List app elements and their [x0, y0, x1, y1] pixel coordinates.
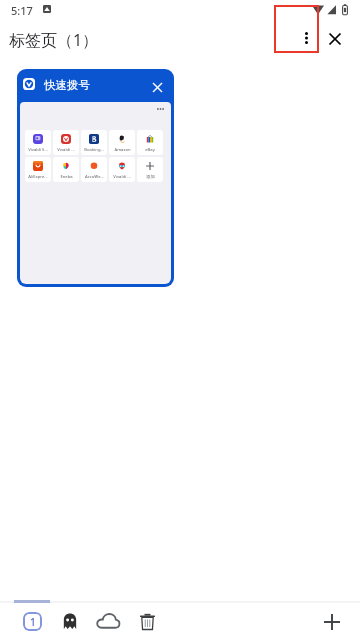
button[interactable]: Vivaldi ... [109, 157, 135, 182]
button[interactable]: eBay [137, 130, 163, 155]
staticText: Vivaldi ... [57, 147, 75, 153]
staticText: 1 [30, 615, 36, 629]
button[interactable]: Eneba [53, 157, 79, 182]
staticText: 快速拨号 [44, 78, 90, 92]
staticText: Amazon [114, 147, 131, 153]
staticText: Vivaldi ... [113, 174, 131, 180]
button[interactable]: Amazon [109, 130, 135, 155]
staticText: Booking... [84, 147, 104, 153]
button[interactable]: More options [288, 20, 324, 56]
button[interactable]: Synced tabs [90, 601, 126, 640]
button[interactable]: 添加 [137, 157, 163, 182]
button[interactable]: Private tabs [52, 601, 88, 640]
button[interactable]: Recently closed tabs [129, 601, 165, 640]
staticText: 标签页（1） [9, 29, 99, 51]
button[interactable]: New tab [310, 601, 352, 640]
staticText: 添加 [146, 174, 155, 179]
button[interactable]: Booking... [81, 130, 107, 155]
button[interactable]: Tabs [12, 601, 52, 640]
staticText: AliExpre... [28, 174, 48, 180]
button[interactable]: Vivaldi ... [53, 130, 79, 155]
button[interactable]: Close [320, 24, 350, 54]
button[interactable]: Vivaldi S... [25, 130, 51, 155]
staticText: 5:17 [11, 3, 33, 18]
button[interactable]: 快速拨号 [17, 69, 174, 287]
button[interactable]: AliExpre... [25, 157, 51, 182]
staticText: Eneba [60, 174, 73, 180]
staticText: eBay [145, 147, 155, 153]
button[interactable]: Close tab [146, 76, 168, 98]
button[interactable]: AccuWe... [81, 157, 107, 182]
staticText: Vivaldi S... [28, 147, 48, 153]
staticText: AccuWe... [85, 174, 104, 180]
